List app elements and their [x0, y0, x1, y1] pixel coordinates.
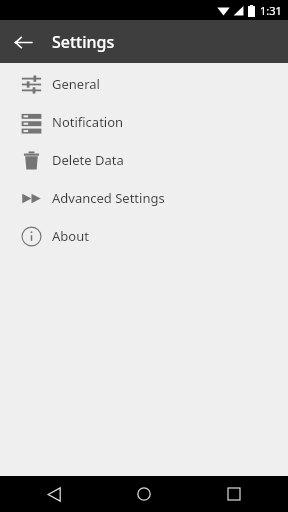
button[interactable]: Back — [18, 476, 90, 512]
staticText: General — [52, 75, 100, 93]
button[interactable]: Advanced Settings — [0, 179, 288, 217]
button[interactable]: General — [0, 65, 288, 103]
button[interactable]: Back — [6, 25, 40, 59]
button[interactable]: Recent apps — [198, 476, 270, 512]
staticText: About — [52, 227, 89, 245]
staticText: 1:31 — [260, 3, 282, 18]
staticText: Settings — [52, 31, 115, 53]
staticText: Advanced Settings — [52, 189, 165, 207]
staticText: Notification — [52, 113, 124, 131]
button[interactable]: Home — [108, 476, 180, 512]
staticText: Delete Data — [52, 151, 124, 169]
button[interactable]: Notification — [0, 103, 288, 141]
button[interactable]: Delete Data — [0, 141, 288, 179]
button[interactable]: About — [0, 217, 288, 255]
